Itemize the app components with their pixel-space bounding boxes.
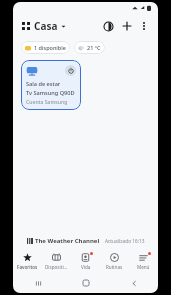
staticText: Casa bbox=[34, 19, 58, 33]
button[interactable]: Atrás bbox=[127, 276, 141, 290]
button[interactable]: Dispositi... bbox=[42, 249, 71, 273]
button[interactable]: Modo oscuro bbox=[100, 18, 116, 34]
button[interactable]: Rutinas bbox=[100, 249, 129, 273]
staticText: 1 disponible bbox=[34, 44, 66, 51]
staticText: Rutinas bbox=[106, 264, 123, 270]
button[interactable]: Menú bbox=[129, 249, 158, 273]
button[interactable]: Casa bbox=[20, 17, 68, 35]
staticText: Tv Samsung Q90D bbox=[26, 89, 75, 97]
staticText: The Weather Channel bbox=[35, 237, 100, 245]
button[interactable]: Favoritos bbox=[13, 249, 42, 273]
staticText: Vida bbox=[81, 264, 91, 270]
staticText: Dispositi... bbox=[45, 264, 68, 270]
staticText: Actualizado 16:13 bbox=[105, 238, 145, 245]
staticText: Sala de estar bbox=[26, 80, 61, 88]
button[interactable]: Encender bbox=[65, 65, 76, 76]
button[interactable]: Recientes bbox=[31, 276, 45, 290]
staticText: Cuenta Samsung bbox=[26, 98, 68, 105]
button[interactable]: Encender bbox=[21, 60, 81, 110]
button[interactable]: Inicio bbox=[79, 276, 93, 290]
button[interactable]: Añadir bbox=[119, 18, 135, 34]
staticText: 21 °C bbox=[87, 44, 101, 51]
button[interactable]: Más opciones bbox=[137, 19, 151, 33]
button[interactable]: 21 °C bbox=[74, 41, 105, 54]
staticText: Menú bbox=[137, 264, 150, 270]
button[interactable]: 1 disponible bbox=[21, 41, 70, 54]
staticText: Favoritos bbox=[17, 264, 38, 270]
button[interactable]: Vida bbox=[71, 249, 100, 273]
